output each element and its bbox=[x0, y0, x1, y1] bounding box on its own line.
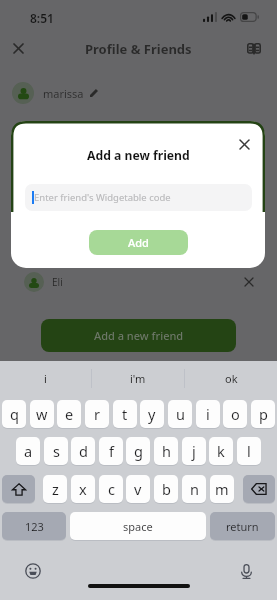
button[interactable]: z bbox=[43, 475, 67, 503]
button[interactable]: s bbox=[44, 437, 68, 465]
button[interactable]: h bbox=[154, 437, 178, 465]
staticText: n bbox=[190, 479, 199, 499]
staticText: z bbox=[52, 479, 59, 499]
staticText: y bbox=[148, 404, 156, 424]
button[interactable]: b bbox=[154, 475, 178, 503]
button[interactable]: n bbox=[182, 475, 206, 503]
staticText: t bbox=[122, 404, 128, 424]
button[interactable]: r bbox=[85, 400, 109, 428]
staticText: r bbox=[94, 404, 100, 424]
button[interactable]: Contacts bbox=[242, 37, 265, 60]
staticText: Add a new friend bbox=[94, 328, 184, 343]
button[interactable]: y bbox=[140, 400, 164, 428]
staticText: j bbox=[192, 441, 196, 461]
button[interactable]: ok bbox=[185, 364, 277, 392]
button[interactable]: return bbox=[210, 512, 275, 540]
button[interactable]: Backspace bbox=[243, 475, 275, 503]
staticText: p bbox=[259, 404, 268, 424]
staticText: i'm bbox=[130, 371, 146, 386]
button[interactable]: Add bbox=[89, 230, 188, 255]
staticText: q bbox=[10, 404, 19, 424]
button[interactable]: Close dialog bbox=[234, 134, 255, 155]
staticText: o bbox=[231, 404, 240, 424]
staticText: a bbox=[24, 441, 33, 461]
button[interactable]: x bbox=[71, 475, 95, 503]
staticText: space bbox=[123, 519, 153, 534]
button[interactable]: i bbox=[0, 364, 91, 392]
button[interactable]: o bbox=[223, 400, 247, 428]
button[interactable]: e bbox=[57, 400, 81, 428]
button[interactable]: f bbox=[99, 437, 123, 465]
button[interactable]: g bbox=[126, 437, 150, 465]
staticText: l bbox=[247, 441, 251, 461]
button[interactable]: u bbox=[168, 400, 192, 428]
button[interactable]: t bbox=[113, 400, 137, 428]
button[interactable]: w bbox=[30, 400, 54, 428]
staticText: Eli bbox=[52, 275, 63, 289]
staticText: ok bbox=[225, 371, 238, 386]
staticText: s bbox=[53, 441, 60, 461]
staticText: Enter friend's Widgetable code bbox=[34, 191, 171, 204]
button[interactable]: Remove friend bbox=[238, 271, 259, 292]
staticText: v bbox=[134, 479, 142, 499]
staticText: Profile & Friends bbox=[85, 40, 192, 58]
button[interactable]: i bbox=[196, 400, 220, 428]
staticText: w bbox=[36, 404, 48, 424]
staticText: k bbox=[217, 441, 225, 461]
button[interactable]: Add a new friend bbox=[41, 319, 236, 352]
staticText: f bbox=[109, 441, 114, 461]
staticText: b bbox=[162, 479, 171, 499]
staticText: Add a new friend bbox=[87, 147, 190, 164]
button[interactable]: i'm bbox=[92, 364, 184, 392]
button[interactable]: j bbox=[182, 437, 206, 465]
staticText: i bbox=[44, 371, 47, 386]
button[interactable]: p bbox=[251, 400, 275, 428]
button[interactable]: 123 bbox=[2, 512, 66, 540]
staticText: 8:51 bbox=[30, 10, 54, 26]
button[interactable]: m bbox=[210, 475, 234, 503]
button[interactable]: a bbox=[16, 437, 40, 465]
button[interactable]: Enter friend's Widgetable code bbox=[25, 184, 252, 211]
button[interactable]: Emoji keyboard bbox=[22, 560, 44, 582]
staticText: i bbox=[206, 404, 210, 424]
button[interactable]: space bbox=[70, 512, 206, 540]
staticText: m bbox=[215, 479, 229, 499]
button[interactable]: Shift bbox=[2, 475, 35, 503]
button[interactable]: c bbox=[99, 475, 123, 503]
staticText: 123 bbox=[25, 519, 44, 534]
staticText: c bbox=[108, 479, 115, 499]
button[interactable]: d bbox=[71, 437, 95, 465]
button[interactable]: q bbox=[2, 400, 26, 428]
staticText: Add bbox=[128, 235, 149, 250]
staticText: h bbox=[162, 441, 171, 461]
button[interactable]: v bbox=[126, 475, 150, 503]
staticText: u bbox=[176, 404, 185, 424]
staticText: d bbox=[79, 441, 88, 461]
staticText: x bbox=[79, 479, 87, 499]
staticText: g bbox=[134, 441, 143, 461]
button[interactable]: Dictation bbox=[235, 560, 257, 582]
staticText: marissa bbox=[43, 86, 84, 101]
staticText: return bbox=[226, 519, 259, 534]
button[interactable]: l bbox=[237, 437, 261, 465]
button[interactable]: Close bbox=[7, 37, 30, 60]
button[interactable]: k bbox=[209, 437, 233, 465]
staticText: e bbox=[65, 404, 74, 424]
